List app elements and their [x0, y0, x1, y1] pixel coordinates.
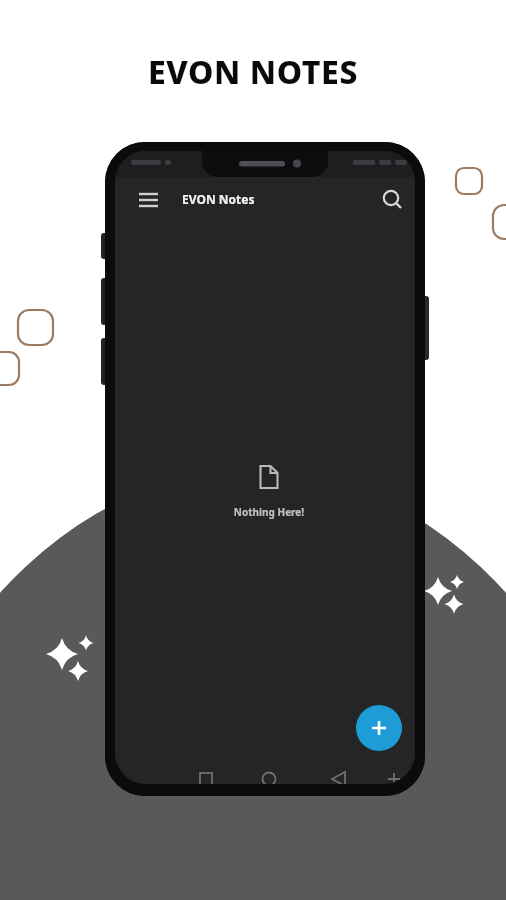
- button[interactable]: Search: [379, 187, 405, 213]
- staticText: Nothing Here!: [219, 505, 319, 900]
- staticText: EVON Notes: [182, 191, 255, 207]
- button[interactable]: Open navigation menu: [136, 186, 164, 214]
- button[interactable]: EVON Notes: [182, 191, 255, 207]
- staticText: EVON NOTES: [0, 50, 506, 900]
- button[interactable]: Add note: [356, 705, 402, 751]
